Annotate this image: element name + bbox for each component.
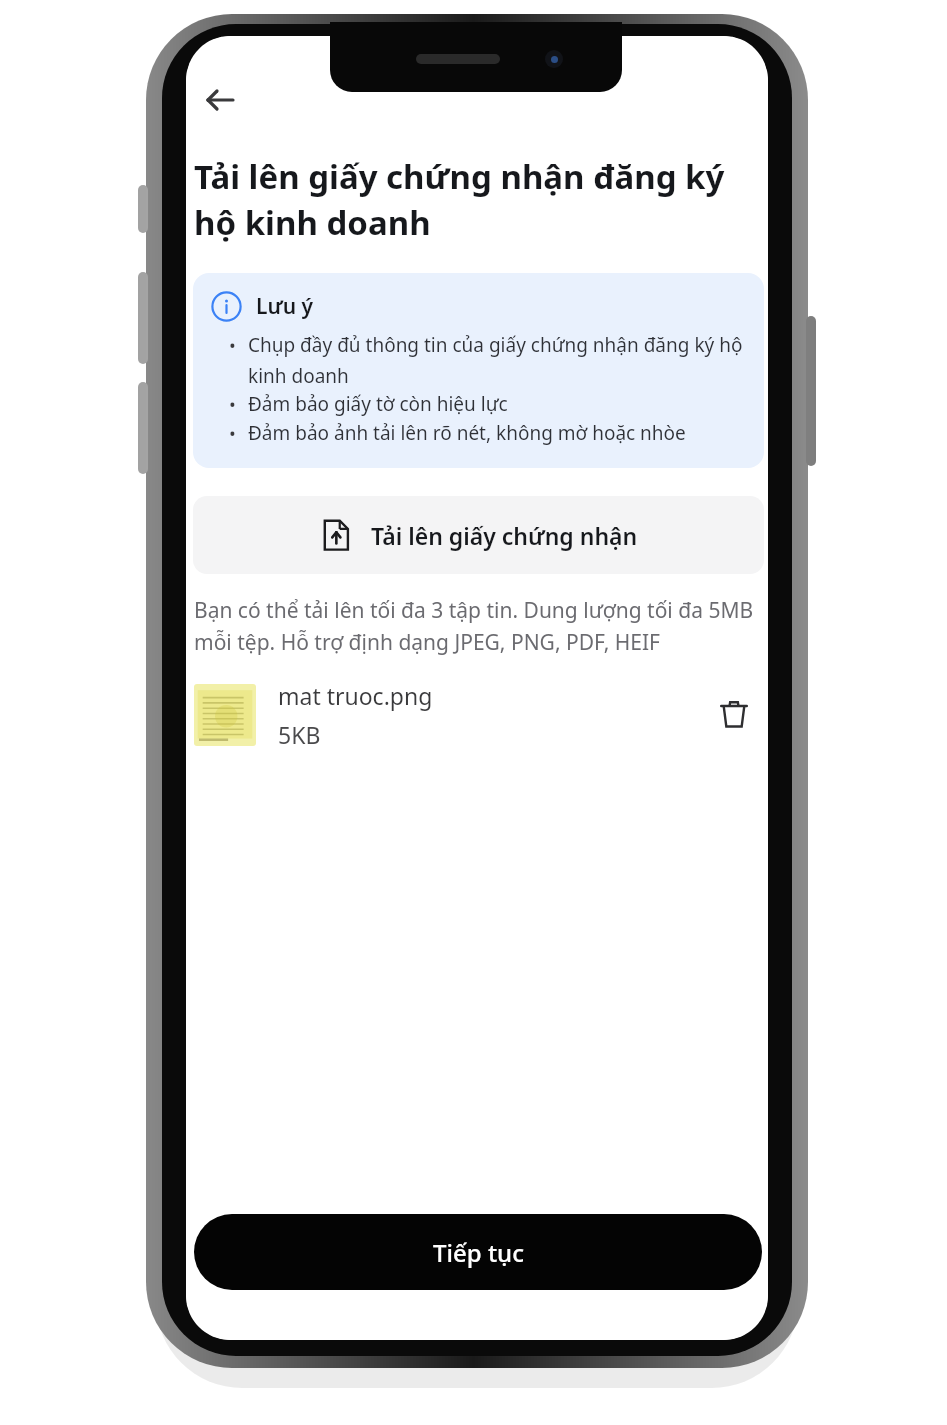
button[interactable]: Back — [192, 72, 248, 128]
staticText: Tải lên giấy chứng nhận — [371, 520, 638, 551]
staticText: 5KB — [278, 719, 321, 750]
button[interactable]: Tiếp tục — [194, 1214, 762, 1290]
button[interactable]: mat truoc.png — [194, 680, 760, 750]
staticText: mat truoc.png — [278, 680, 433, 711]
staticText: Tiếp tục — [433, 1236, 524, 1269]
staticText: • — [229, 392, 236, 417]
staticText: Đảm bảo ảnh tải lên rõ nét, không mờ hoặ… — [248, 420, 686, 446]
button[interactable]: Tải lên giấy chứng nhận — [193, 496, 764, 574]
button[interactable]: Delete file — [708, 689, 760, 741]
staticText: Tải lên giấy chứng nhận đăng ký hộ kinh … — [194, 154, 756, 245]
staticText: Bạn có thể tải lên tối đa 3 tập tin. Dun… — [194, 596, 764, 656]
staticText: • — [229, 333, 236, 358]
staticText: Đảm bảo giấy tờ còn hiệu lực — [248, 391, 508, 417]
staticText: • — [229, 421, 236, 446]
staticText: Chụp đầy đủ thông tin của giấy chứng nhậ… — [248, 332, 750, 388]
staticText: Lưu ý — [256, 292, 314, 321]
